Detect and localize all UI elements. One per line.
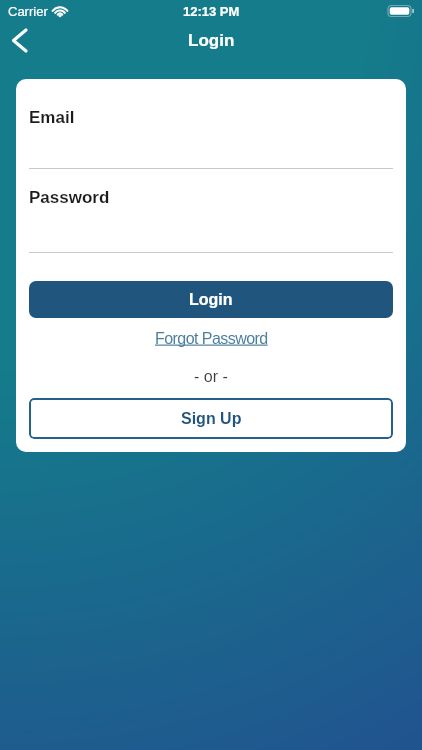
staticText: - or - [194, 368, 228, 386]
staticText: Sign Up [181, 410, 242, 428]
staticText: Password [29, 188, 110, 207]
button[interactable]: Sign Up [29, 398, 393, 439]
staticText: Login [189, 291, 233, 309]
staticText: Carrier [8, 4, 48, 19]
button[interactable] [4, 25, 34, 55]
staticText: Login [188, 31, 235, 50]
button[interactable]: Forgot Password [155, 330, 268, 348]
staticText: 12:13 PM [183, 4, 240, 19]
staticText: Forgot Password [155, 330, 268, 348]
staticText: Email [29, 108, 75, 127]
button[interactable]: Login [29, 281, 393, 318]
